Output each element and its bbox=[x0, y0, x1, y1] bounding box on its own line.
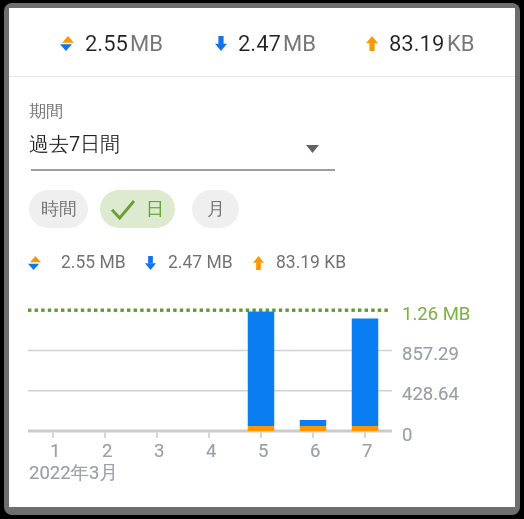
button[interactable]: Open period selector bbox=[292, 134, 332, 164]
button[interactable]: 日 bbox=[100, 190, 175, 228]
staticText: 7 bbox=[362, 440, 373, 462]
button[interactable]: 83.19 KB usage bbox=[340, 8, 500, 76]
staticText: 3 bbox=[154, 440, 165, 462]
staticText: 2.55 MB bbox=[61, 252, 126, 273]
staticText: 時間 bbox=[41, 198, 77, 221]
staticText: 月 bbox=[207, 198, 225, 221]
button[interactable]: 月 bbox=[192, 190, 239, 228]
staticText: 2.47 bbox=[238, 31, 281, 57]
staticText: 1.26 MB bbox=[402, 303, 471, 325]
staticText: 日 bbox=[146, 198, 164, 221]
staticText: 83.19 bbox=[389, 31, 445, 57]
staticText: 83.19 KB bbox=[276, 252, 347, 273]
button[interactable]: 2.55 MB usage bbox=[32, 8, 192, 76]
button[interactable]: 時間 bbox=[29, 190, 88, 228]
staticText: MB bbox=[283, 31, 316, 57]
staticText: 0 bbox=[402, 424, 413, 446]
staticText: 4 bbox=[206, 440, 217, 462]
staticText: 2.47 MB bbox=[168, 252, 233, 273]
staticText: 期間 bbox=[29, 101, 63, 122]
staticText: 過去7日間 bbox=[29, 132, 121, 157]
staticText: 1 bbox=[50, 440, 61, 462]
staticText: KB bbox=[447, 31, 475, 57]
staticText: 2 bbox=[102, 440, 113, 462]
staticText: 6 bbox=[310, 440, 321, 462]
staticText: 857.29 bbox=[402, 343, 459, 365]
button[interactable]: 2.47 MB usage bbox=[186, 8, 346, 76]
staticText: 428.64 bbox=[402, 383, 459, 405]
staticText: 2022年3月 bbox=[29, 461, 118, 484]
staticText: 5 bbox=[258, 440, 269, 462]
staticText: 2.55 bbox=[85, 31, 128, 57]
staticText: MB bbox=[130, 31, 163, 57]
